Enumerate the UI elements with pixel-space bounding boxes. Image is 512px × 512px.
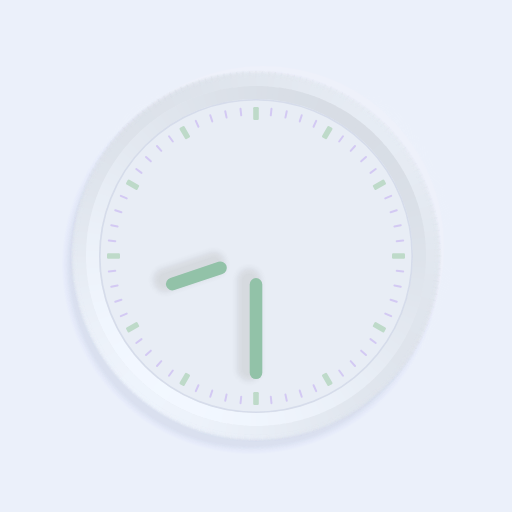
button[interactable]: Analog clock showing 8:30 [0, 0, 512, 512]
